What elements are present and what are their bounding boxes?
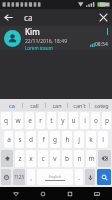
staticText: e [28,116,32,125]
button[interactable]: p [102,112,111,129]
button[interactable]: i [80,112,89,129]
button[interactable]: Backspace [98,150,111,167]
button[interactable]: can't [68,99,90,111]
button[interactable]: a [4,131,13,148]
staticText: z [18,154,22,163]
button[interactable]: w [13,112,23,129]
button[interactable]: Voice input [85,169,95,185]
staticText: v [53,154,57,163]
staticText: Lorem ipsum [25,45,53,50]
button[interactable]: ca [0,99,23,111]
button[interactable]: r [36,112,45,129]
staticText: . [78,173,80,182]
button[interactable]: ?123 [13,169,25,185]
button[interactable]: e [25,112,34,129]
staticText: d [29,135,33,144]
button[interactable]: Search [97,169,111,185]
button[interactable]: , [27,169,35,185]
staticText: , [30,173,32,182]
staticText: can't [73,102,86,109]
button[interactable]: Recents [63,187,76,200]
staticText: call [30,102,39,109]
staticText: categ [94,102,109,109]
button[interactable]: b [62,150,72,167]
staticText: c [41,154,45,163]
button[interactable]: call [23,99,46,111]
staticText: English [49,174,61,179]
button[interactable]: Home [36,187,49,200]
button[interactable]: m [86,150,96,167]
button[interactable]: Back [9,187,22,200]
button[interactable]: Back [0,9,17,26]
staticText: s [18,135,22,144]
staticText: y [61,116,65,125]
staticText: can [52,102,62,109]
button[interactable]: Hide keyboard [90,187,103,200]
button[interactable]: y [58,112,67,129]
button[interactable]: ca [17,9,95,26]
staticText: f [42,135,45,144]
staticText: 08:54 [95,41,108,48]
staticText: ?123 [14,174,24,180]
staticText: i [84,116,86,125]
button[interactable]: s [15,131,24,148]
button[interactable]: n [74,150,84,167]
button[interactable]: k [86,131,96,148]
staticText: x [29,154,33,163]
staticText: q [4,116,8,125]
button[interactable]: f [38,131,48,148]
staticText: ca [24,12,33,23]
button[interactable]: can [46,99,68,111]
staticText: p [105,116,109,125]
staticText: m [88,154,95,163]
button[interactable]: Emoji [1,169,11,185]
staticText: a [7,135,11,144]
button[interactable]: x [26,150,36,167]
staticText: 22/11/2016, 18:49 [25,38,68,45]
button[interactable]: t [47,112,56,129]
staticText: j [78,135,80,144]
staticText: h [65,135,70,144]
button[interactable]: h [62,131,72,148]
button[interactable]: d [26,131,36,148]
button[interactable]: q [1,112,11,129]
button[interactable]: Space [37,169,73,185]
staticText: l [102,135,104,144]
staticText: ca [9,102,15,109]
staticText: w [15,116,21,125]
button[interactable]: v [50,150,60,167]
button[interactable]: j [74,131,84,148]
button[interactable]: c [38,150,48,167]
staticText: r [39,116,42,125]
button[interactable]: l [98,131,108,148]
button[interactable]: Clear search [95,9,112,26]
staticText: k [89,135,93,144]
button[interactable]: Shift [1,150,13,167]
button[interactable]: u [69,112,78,129]
staticText: g [53,135,57,144]
button[interactable]: Kim [0,26,112,50]
staticText: u [71,116,76,125]
button[interactable]: z [15,150,24,167]
button[interactable]: categ [90,99,112,111]
staticText: b [65,154,69,163]
staticText: o [94,116,98,125]
staticText: Kim [25,26,40,37]
staticText: t [50,116,53,125]
button[interactable]: o [91,112,100,129]
button[interactable]: . [75,169,83,185]
button[interactable]: g [50,131,60,148]
staticText: n [77,154,82,163]
